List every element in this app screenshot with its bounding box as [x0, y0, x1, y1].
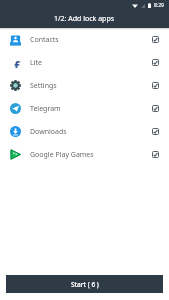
staticText: 1/2: Add lock apps [54, 14, 115, 24]
button[interactable]: Lite selected [152, 59, 159, 66]
staticText: Downloads [30, 127, 67, 137]
button[interactable]: Google Play Games [0, 143, 169, 166]
button[interactable]: Downloads [0, 120, 169, 143]
button[interactable]: Telegram [0, 97, 169, 120]
staticText: Google Play Games [30, 150, 94, 160]
button[interactable]: f [0, 51, 169, 74]
staticText: Start ( 6 ) [71, 280, 99, 289]
button[interactable]: Start ( 6 ) [6, 275, 163, 293]
button[interactable]: Settings selected [152, 82, 159, 89]
button[interactable]: Contacts selected [152, 36, 159, 43]
button[interactable]: Settings [0, 74, 169, 97]
staticText: Telegram [30, 104, 61, 114]
staticText: Settings [30, 81, 57, 91]
button[interactable]: Downloads selected [152, 128, 159, 135]
staticText: Lite [30, 58, 42, 68]
staticText: Contacts [30, 35, 59, 45]
staticText: 8:29 [154, 2, 164, 9]
staticText: f [14, 57, 20, 68]
button[interactable]: Google Play Games selected [152, 151, 159, 158]
button[interactable]: Contacts [0, 28, 169, 51]
button[interactable]: Telegram selected [152, 105, 159, 112]
